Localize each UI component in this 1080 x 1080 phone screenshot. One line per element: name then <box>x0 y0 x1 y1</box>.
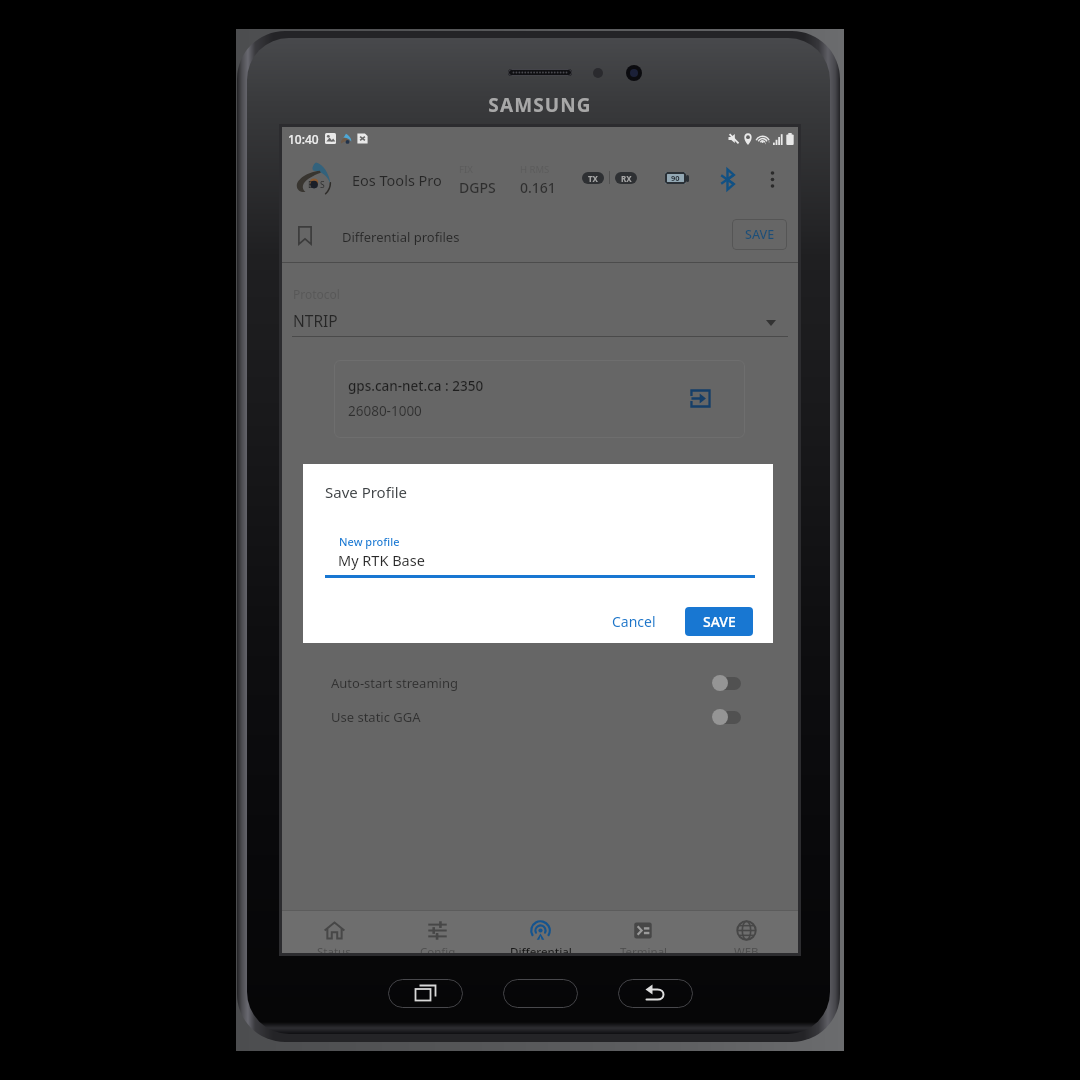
staticText: Save Profile <box>325 482 408 502</box>
staticText: gps.can-net.ca : 2350 <box>348 377 484 395</box>
staticText: Auto-start streaming <box>331 674 458 692</box>
button[interactable]: Auto-start streaming <box>331 666 741 700</box>
staticText: Protocol <box>293 286 340 302</box>
button[interactable]: More options <box>755 162 789 196</box>
staticText: My RTK Base <box>338 550 425 570</box>
button[interactable]: Terminal <box>592 911 695 953</box>
staticText: Differential profiles <box>342 228 460 246</box>
staticText: SAVE <box>703 612 736 631</box>
staticText: RX <box>621 173 632 184</box>
staticText: S <box>320 179 325 191</box>
staticText: 10:40 <box>288 131 319 147</box>
staticText: Cancel <box>612 612 656 631</box>
button[interactable]: Differential <box>489 911 592 953</box>
button[interactable]: Connect <box>686 384 714 412</box>
staticText: SAVE <box>745 226 775 243</box>
button[interactable]: Status <box>282 911 386 953</box>
staticText: NTRIP <box>293 310 338 331</box>
staticText: FIX <box>459 163 473 176</box>
staticText: Eos Tools Pro <box>352 170 442 190</box>
staticText: Config <box>420 944 456 953</box>
button[interactable]: SAVE <box>685 607 753 636</box>
staticText: 26080-1000 <box>348 402 422 420</box>
button[interactable]: Bluetooth <box>710 162 744 196</box>
staticText: Terminal <box>620 944 668 953</box>
button[interactable]: Use static GGA <box>331 700 741 734</box>
staticText: WEB <box>734 944 759 953</box>
staticText: Differential <box>510 944 572 953</box>
staticText: TX <box>588 173 598 184</box>
staticText: SAMSUNG <box>469 92 611 116</box>
staticText: Status <box>317 944 351 953</box>
button[interactable]: Config <box>386 911 489 953</box>
staticText: New profile <box>339 534 400 549</box>
button[interactable]: gps.can-net.ca : 2350 <box>334 360 745 438</box>
staticText: Use static GGA <box>331 708 421 726</box>
button[interactable]: Bookmark <box>288 218 322 252</box>
button[interactable]: SAVE <box>732 219 787 250</box>
button[interactable]: Cancel <box>602 605 666 638</box>
button[interactable]: WEB <box>695 911 798 953</box>
staticText: E <box>308 179 313 191</box>
staticText: DGPS <box>459 178 496 197</box>
staticText: 0.161 <box>520 178 556 197</box>
staticText: 90 <box>671 173 680 183</box>
